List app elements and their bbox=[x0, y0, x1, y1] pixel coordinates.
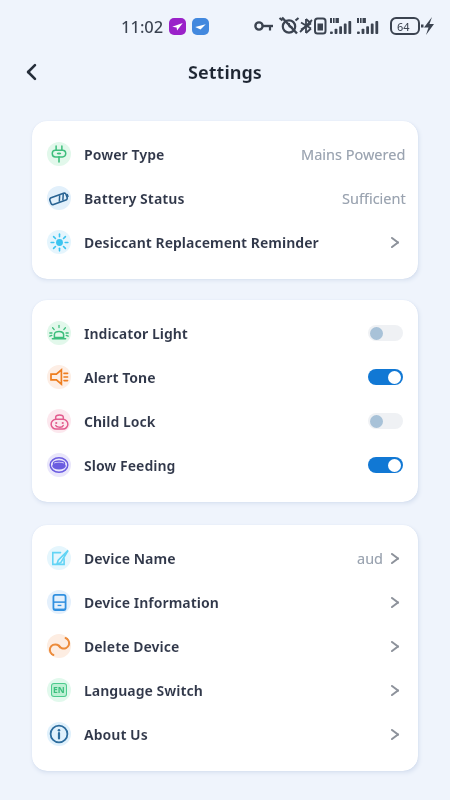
button[interactable]: Switch off bbox=[368, 413, 403, 429]
button[interactable]: Device Name bbox=[32, 536, 418, 580]
button[interactable]: Back bbox=[11, 52, 51, 92]
button[interactable]: About Us bbox=[32, 712, 418, 756]
staticText: 11:02 bbox=[121, 15, 164, 37]
staticText: Slow Feeding bbox=[84, 456, 176, 475]
button[interactable]: Switch off bbox=[368, 325, 403, 341]
button[interactable]: Battery Status bbox=[32, 176, 418, 220]
staticText: Language Switch bbox=[84, 681, 203, 700]
staticText: Battery Status bbox=[84, 189, 185, 208]
staticText: Child Lock bbox=[84, 412, 156, 431]
button[interactable]: Switch on bbox=[368, 369, 403, 385]
staticText: Device Information bbox=[84, 593, 219, 612]
staticText: Delete Device bbox=[84, 637, 180, 656]
staticText: About Us bbox=[84, 725, 148, 744]
staticText: Power Type bbox=[84, 145, 165, 164]
button[interactable]: Slow Feeding bbox=[32, 443, 418, 487]
staticText: Sufficient bbox=[342, 188, 406, 208]
button[interactable]: Device Information bbox=[32, 580, 418, 624]
button[interactable]: Indicator Light bbox=[32, 311, 418, 355]
button[interactable]: Power Type bbox=[32, 132, 418, 176]
button[interactable]: Desiccant Replacement Reminder bbox=[32, 220, 418, 264]
staticText: Device Name bbox=[84, 549, 176, 568]
button[interactable]: Child Lock bbox=[32, 399, 418, 443]
button[interactable]: Switch on bbox=[368, 457, 403, 473]
button[interactable]: EN bbox=[32, 668, 418, 712]
button[interactable]: Alert Tone bbox=[32, 355, 418, 399]
staticText: Indicator Light bbox=[84, 324, 188, 343]
staticText: Alert Tone bbox=[84, 368, 156, 387]
staticText: aud bbox=[357, 548, 384, 568]
button[interactable]: Delete Device bbox=[32, 624, 418, 668]
staticText: Mains Powered bbox=[301, 144, 406, 164]
staticText: 64 bbox=[397, 19, 410, 34]
staticText: Desiccant Replacement Reminder bbox=[84, 233, 319, 252]
staticText: Settings bbox=[188, 60, 262, 85]
staticText: EN bbox=[53, 684, 65, 696]
